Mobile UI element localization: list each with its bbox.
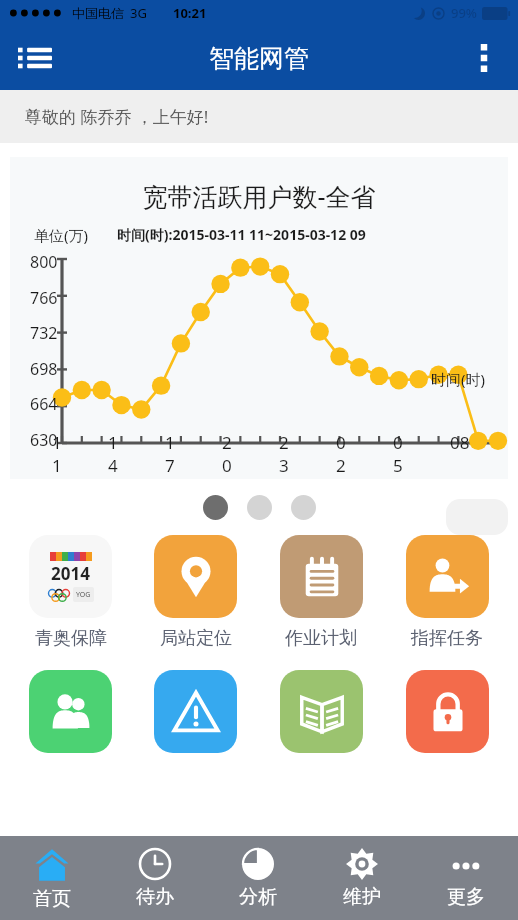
staticText: 维护 — [343, 885, 381, 909]
button[interactable]: Menu — [8, 31, 62, 85]
staticText: 3G — [130, 4, 147, 22]
staticText: 首页 — [33, 887, 71, 911]
staticText: 99% — [451, 4, 477, 22]
button[interactable]: 2014 — [8, 535, 133, 650]
button[interactable]: 作业计划 — [258, 535, 384, 650]
staticText: 630 — [30, 429, 58, 451]
staticText: 青奥保障 — [35, 627, 107, 650]
staticText: 664 — [30, 393, 58, 415]
staticText: 10:21 — [173, 4, 207, 22]
staticText: 2014 — [51, 562, 90, 585]
button[interactable]: 局站定位 — [133, 535, 258, 650]
staticText: YOG — [76, 590, 91, 600]
staticText: 更多 — [447, 885, 485, 909]
button[interactable]: App — [258, 670, 384, 753]
staticText: 800 — [30, 251, 58, 273]
staticText: 尊敬的 陈乔乔 ，上午好! — [25, 105, 209, 128]
button[interactable]: App — [384, 670, 510, 753]
button[interactable]: 首页 — [0, 836, 103, 920]
button[interactable]: App — [8, 670, 133, 753]
button[interactable]: App — [133, 670, 258, 753]
staticText: 766 — [30, 287, 58, 309]
staticText: 时间(时) — [431, 369, 486, 389]
staticText: 08 — [450, 431, 480, 454]
staticText: 时间(时):2015-03-11 11~2015-03-12 09 — [117, 225, 366, 244]
staticText: 作业计划 — [285, 627, 357, 650]
button[interactable]: 分析 — [206, 836, 310, 920]
button[interactable]: Page 2 — [247, 495, 272, 520]
staticText: 单位(万) — [34, 225, 89, 245]
staticText: 指挥任务 — [411, 627, 483, 650]
staticText: 局站定位 — [160, 627, 232, 650]
staticText: 宽带活跃用户数-全省 — [10, 179, 508, 213]
button[interactable]: Page 1 — [203, 495, 228, 520]
button[interactable]: 指挥任务 — [384, 535, 510, 650]
staticText: 732 — [30, 322, 58, 344]
button[interactable]: 宽带活跃用户数-全省 — [10, 157, 508, 479]
staticText: 698 — [30, 358, 58, 380]
button[interactable]: More options — [460, 34, 508, 82]
staticText: 智能网管 — [209, 43, 309, 74]
staticText: 中国电信 — [72, 5, 124, 21]
staticText: 待办 — [136, 885, 174, 909]
button[interactable]: 待办 — [103, 836, 206, 920]
button[interactable]: Page 3 — [291, 495, 316, 520]
button[interactable]: 更多 — [414, 836, 518, 920]
staticText: 分析 — [239, 885, 277, 909]
button[interactable]: 维护 — [310, 836, 414, 920]
